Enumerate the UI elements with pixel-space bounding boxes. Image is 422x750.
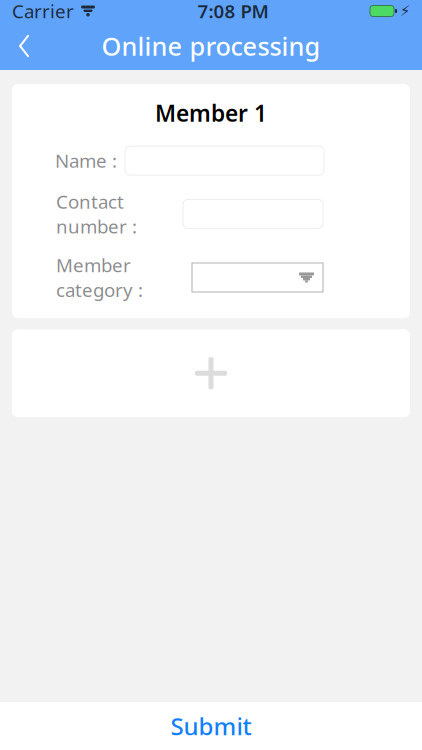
staticText: Name : — [55, 148, 117, 173]
staticText: Submit — [170, 710, 251, 742]
staticText: 7:08 PM — [197, 0, 268, 23]
staticText: Contact number : — [56, 189, 137, 239]
staticText: Member 1 — [155, 98, 267, 128]
button[interactable]: Back — [0, 22, 48, 70]
staticText: ⚡︎ — [400, 3, 410, 19]
button[interactable]: Submit — [0, 702, 422, 750]
staticText: Member category : — [56, 253, 143, 302]
staticText: Online processing — [101, 29, 320, 63]
staticText: Carrier — [12, 0, 74, 23]
button[interactable]: Add member — [12, 329, 410, 417]
